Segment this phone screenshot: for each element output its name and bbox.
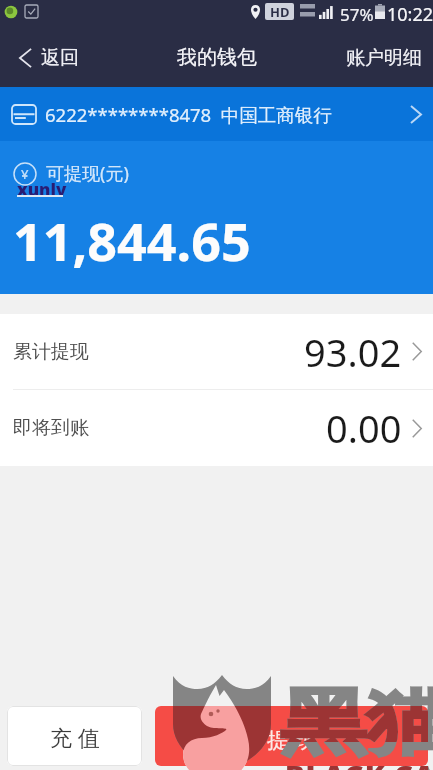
button[interactable]: 提 现	[155, 706, 428, 766]
button[interactable]: 累计提现	[0, 314, 433, 389]
staticText: 10:22	[387, 2, 433, 27]
staticText: ¥	[21, 165, 29, 183]
staticText: 提 现	[267, 724, 317, 754]
button[interactable]: 账户明细	[332, 36, 433, 80]
staticText: 充 值	[50, 722, 100, 752]
button[interactable]: 6222********8478 中国工商银行	[0, 87, 433, 141]
staticText: 6222********8478 中国工商银行	[45, 102, 332, 127]
staticText: 11,844.65	[13, 205, 251, 276]
button[interactable]: 返回	[0, 36, 93, 80]
staticText: HD	[270, 3, 290, 20]
button[interactable]: 充 值	[7, 706, 142, 766]
button[interactable]: 即将到账	[0, 390, 433, 466]
staticText: xunlv	[17, 178, 67, 201]
staticText: BLACK CAT	[285, 757, 433, 770]
staticText: 即将到账	[13, 416, 89, 440]
staticText: 可提现(元)	[46, 161, 129, 186]
staticText: 返回	[41, 46, 79, 70]
staticText: 0.00	[326, 402, 402, 454]
staticText: BLACK CAT	[285, 757, 428, 770]
staticText: 黑猫	[280, 706, 428, 742]
staticText: 93.02	[304, 326, 402, 378]
staticText: 我的钱包	[177, 45, 257, 70]
staticText: 57%	[340, 3, 374, 26]
staticText: 累计提现	[13, 340, 89, 364]
staticText: 黑猫	[280, 678, 433, 769]
